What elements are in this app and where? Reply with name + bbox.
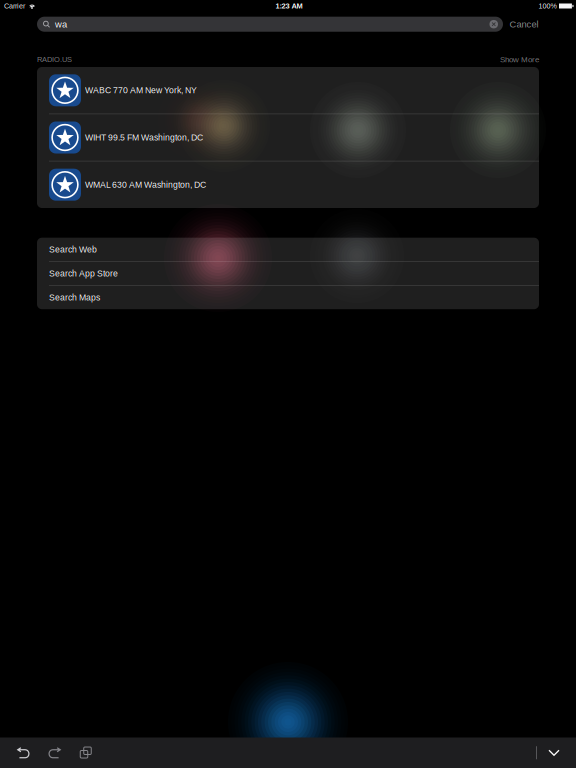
- button[interactable]: Search Web: [37, 238, 539, 261]
- button[interactable]: WIHT 99.5 FM Washington, DC: [37, 114, 539, 161]
- button[interactable]: WMAL 630 AM Washington, DC: [37, 161, 539, 208]
- staticText: Carrier: [4, 2, 25, 10]
- staticText: WABC 770 AM New York, NY: [85, 85, 197, 95]
- staticText: Search Maps: [49, 293, 100, 302]
- button[interactable]: Undo: [8, 737, 39, 768]
- staticText: Search Web: [49, 245, 97, 254]
- staticText: Cancel: [509, 19, 538, 29]
- staticText: 100%: [538, 2, 556, 10]
- staticText: 1:23 AM: [275, 2, 302, 10]
- staticText: wa: [55, 19, 67, 29]
- button[interactable]: Paste: [70, 737, 101, 768]
- button[interactable]: Hide Keyboard: [537, 737, 571, 768]
- button[interactable]: WABC 770 AM New York, NY: [37, 67, 539, 114]
- staticText: Show More: [500, 55, 539, 64]
- button[interactable]: Redo: [39, 737, 70, 768]
- staticText: RADIO.US: [37, 55, 72, 64]
- button[interactable]: Search Maps: [37, 286, 539, 309]
- button[interactable]: Show More: [500, 53, 539, 66]
- staticText: Search App Store: [49, 269, 118, 278]
- button[interactable]: Cancel: [0, 0, 576, 768]
- staticText: WIHT 99.5 FM Washington, DC: [85, 133, 203, 142]
- button[interactable]: Search App Store: [37, 262, 539, 285]
- staticText: WMAL 630 AM Washington, DC: [85, 180, 206, 190]
